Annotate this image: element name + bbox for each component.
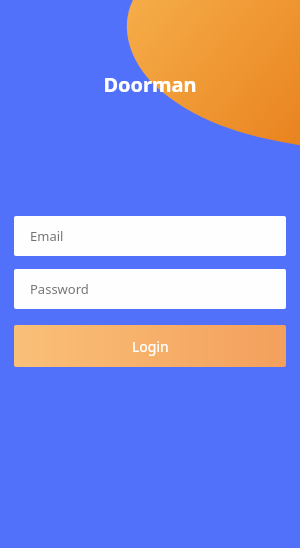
- staticText: Login: [132, 337, 169, 356]
- button[interactable]: Email: [14, 216, 286, 256]
- staticText: Password: [30, 280, 89, 298]
- staticText: Doorman: [0, 71, 300, 98]
- button[interactable]: Password: [14, 269, 286, 309]
- button[interactable]: Login: [14, 325, 286, 367]
- staticText: Email: [30, 227, 64, 245]
